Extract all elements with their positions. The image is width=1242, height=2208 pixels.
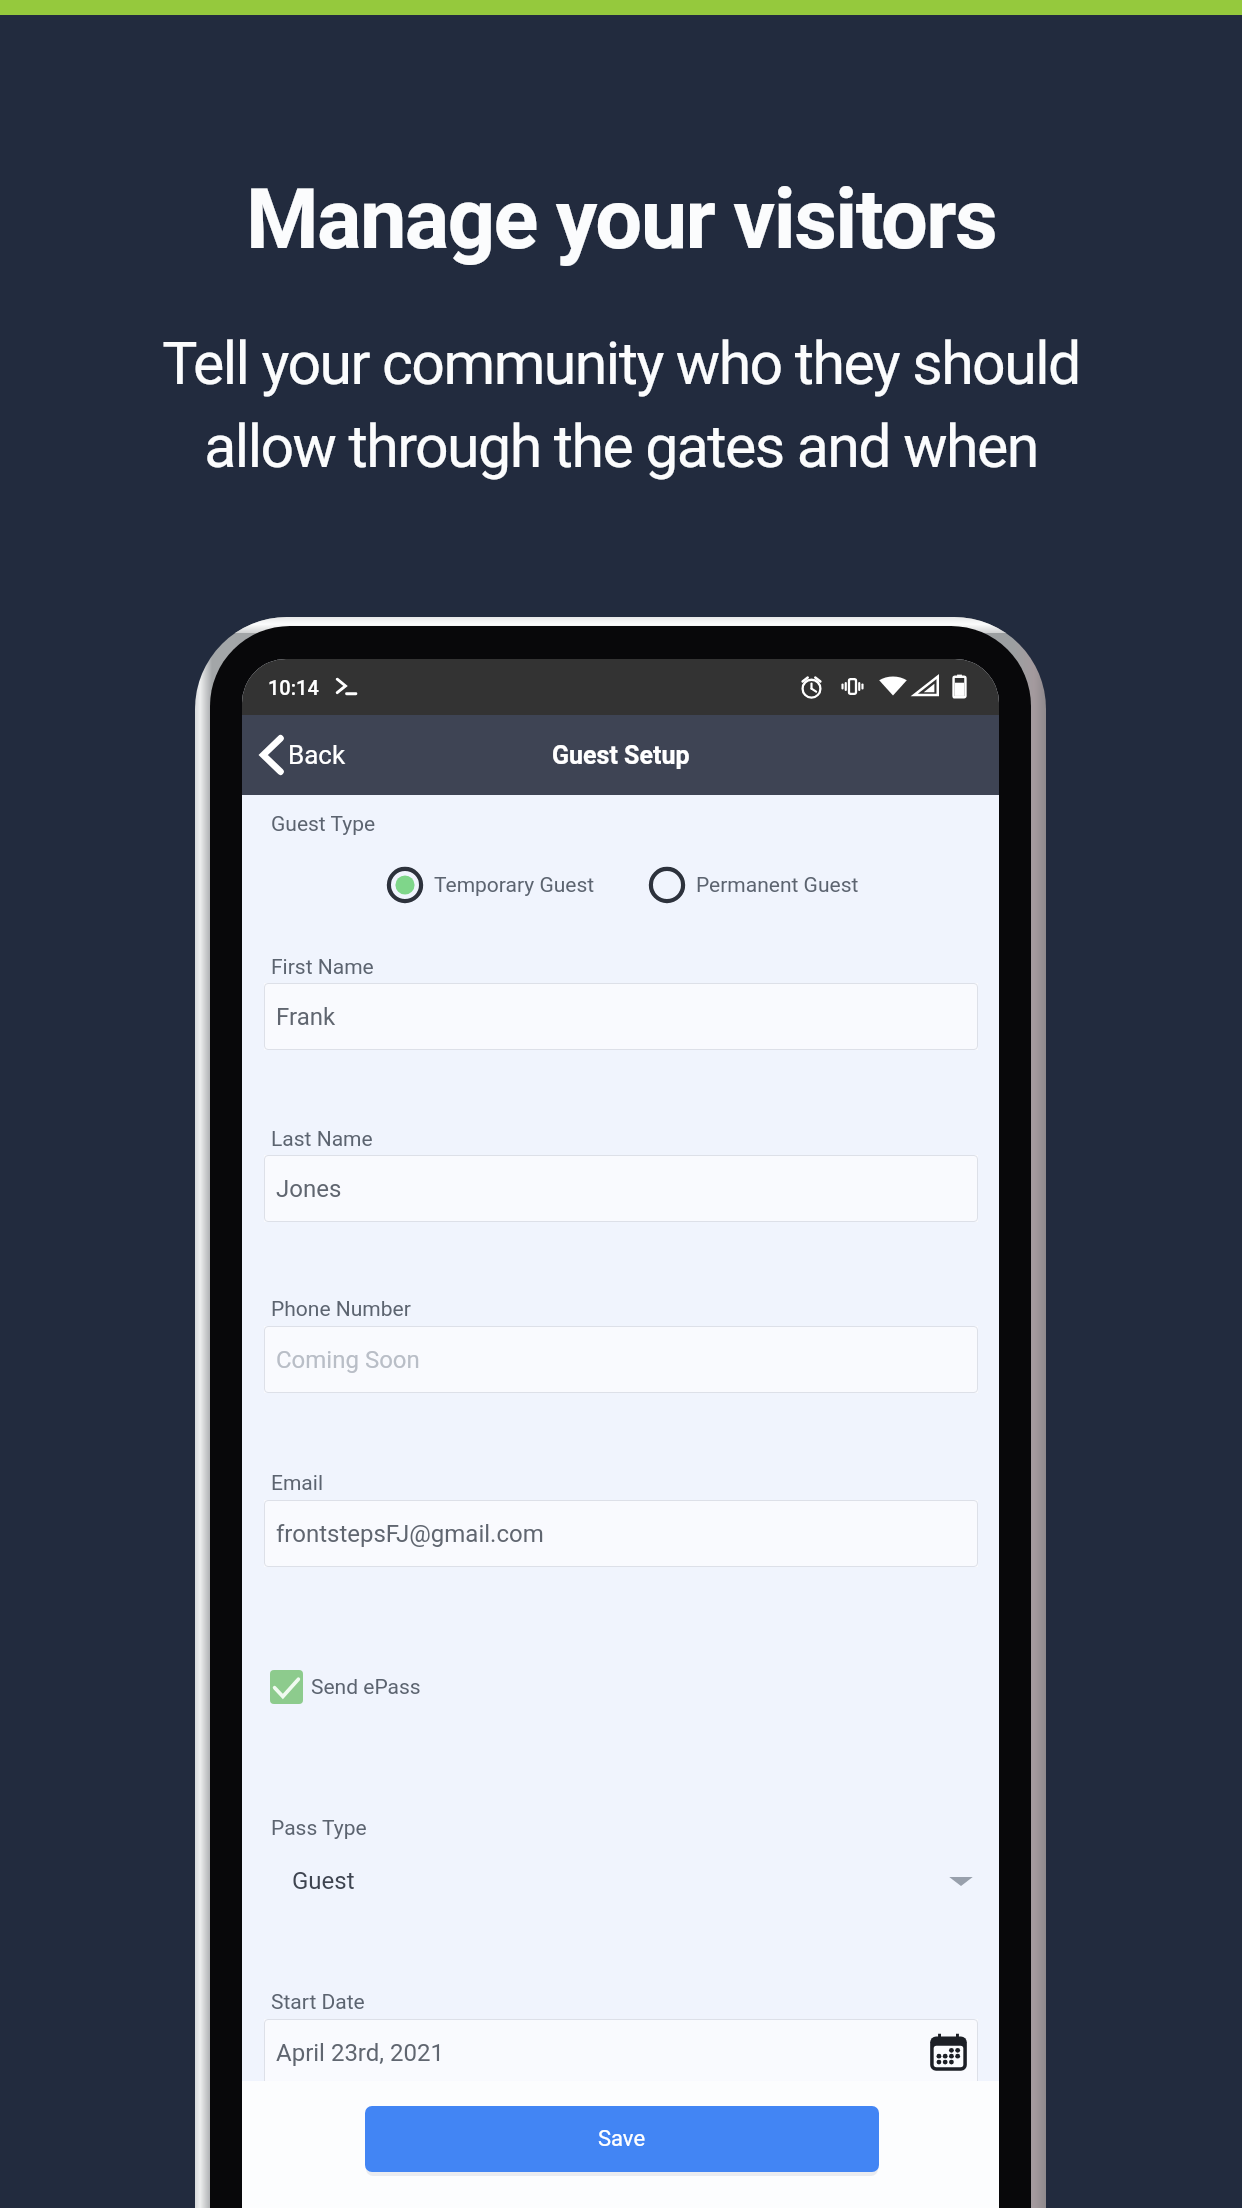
staticText: Start Date: [271, 1990, 365, 2015]
staticText: Pass Type: [271, 1816, 367, 1841]
staticText: Tell your community who they should allo…: [0, 329, 1242, 481]
button[interactable]: Coming Soon: [264, 1326, 978, 1393]
staticText: Send ePass: [311, 1675, 421, 1700]
staticText: Last Name: [271, 1127, 373, 1152]
button[interactable]: Save: [365, 2106, 879, 2172]
staticText: Guest: [292, 1867, 355, 1895]
staticText: Coming Soon: [276, 1346, 420, 1374]
staticText: Guest Setup: [552, 741, 690, 770]
staticText: Back: [288, 740, 346, 770]
staticText: frontstepsFJ@gmail.com: [276, 1520, 544, 1548]
other: Pick date: [929, 2033, 968, 2072]
staticText: Save: [598, 2126, 646, 2152]
button[interactable]: Send ePass: [270, 1670, 421, 1704]
staticText: Frank: [276, 1003, 336, 1031]
button[interactable]: Guest: [242, 1850, 999, 1912]
staticText: Email: [271, 1471, 323, 1496]
button[interactable]: Jones: [264, 1155, 978, 1222]
staticText: April 23rd, 2021: [276, 2039, 444, 2067]
button[interactable]: April 23rd, 2021: [264, 2019, 978, 2086]
staticText: Manage your visitors: [0, 171, 1242, 268]
button[interactable]: Permanent Guest: [648, 866, 859, 904]
staticText: Permanent Guest: [696, 873, 859, 898]
staticText: First Name: [271, 955, 374, 980]
staticText: Jones: [276, 1175, 342, 1203]
button[interactable]: frontstepsFJ@gmail.com: [264, 1500, 978, 1567]
button[interactable]: Back: [242, 723, 368, 787]
staticText: Guest Type: [271, 812, 376, 837]
staticText: Phone Number: [271, 1297, 411, 1322]
staticText: 10:14: [268, 676, 319, 699]
button[interactable]: Temporary Guest: [386, 866, 595, 904]
button[interactable]: Frank: [264, 983, 978, 1050]
staticText: Temporary Guest: [434, 873, 595, 898]
